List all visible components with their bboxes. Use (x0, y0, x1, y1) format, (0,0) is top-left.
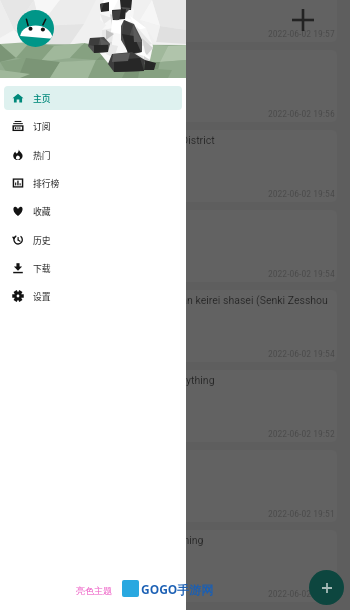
staticText: 2022-06-02 19:52 (268, 428, 335, 439)
staticText: Senki chan keirei shasei (Senki Zesshou (142, 294, 328, 306)
staticText: 2022-06-02 19:54 (268, 268, 335, 279)
button[interactable]: 2022-06-02 19:57 (11, 0, 337, 42)
other: Profile (17, 10, 54, 47)
button[interactable]: I can do anything (11, 370, 337, 442)
staticText: 2022-06-02 19:57 (268, 28, 335, 39)
button[interactable]: 历史 (4, 228, 182, 252)
button[interactable]: 下载 (4, 256, 182, 280)
button[interactable]: Chiyoda District (11, 130, 337, 202)
button[interactable]: 订阅 (4, 114, 182, 138)
staticText: 下载 (33, 262, 51, 275)
staticText: Good morning (137, 534, 204, 546)
button[interactable]: 收藏 (4, 199, 182, 223)
staticText: Chiyoda District (141, 134, 215, 146)
staticText: 2022-06-02 19:54 (268, 188, 335, 199)
button[interactable]: Profile (0, 0, 186, 78)
button[interactable]: 热门 (4, 143, 182, 167)
staticText: 2022-06-02 19:50 (268, 588, 335, 599)
staticText: 2022-06-02 19:56 (268, 108, 335, 119)
staticText: 亮色主题 (76, 585, 112, 596)
button[interactable]: Good morning (11, 530, 337, 602)
button[interactable]: 2022-06-02 19:56 (11, 50, 337, 122)
staticText: 热门 (33, 149, 51, 162)
button[interactable]: 2022-06-02 19:54 (11, 210, 337, 282)
staticText: GOGO手游网 (141, 581, 214, 597)
staticText: 主页 (33, 92, 51, 105)
staticText: 收藏 (33, 205, 51, 218)
staticText: 设置 (33, 290, 51, 303)
staticText: 订阅 (33, 120, 51, 133)
button[interactable]: 排行榜 (4, 171, 182, 195)
staticText: 历史 (33, 234, 51, 247)
staticText: 排行榜 (33, 177, 60, 190)
button[interactable]: 设置 (4, 284, 182, 308)
button[interactable]: Senki chan keirei shasei (Senki Zesshou (11, 290, 337, 362)
staticText: 2022-06-02 19:51 (268, 508, 335, 519)
button[interactable]: Add (309, 570, 344, 605)
button[interactable]: 主页 (4, 86, 182, 110)
staticText: 2022-06-02 19:54 (268, 348, 335, 359)
staticText: I can do anything (135, 374, 215, 386)
button[interactable]: 2022-06-02 19:51 (11, 450, 337, 522)
